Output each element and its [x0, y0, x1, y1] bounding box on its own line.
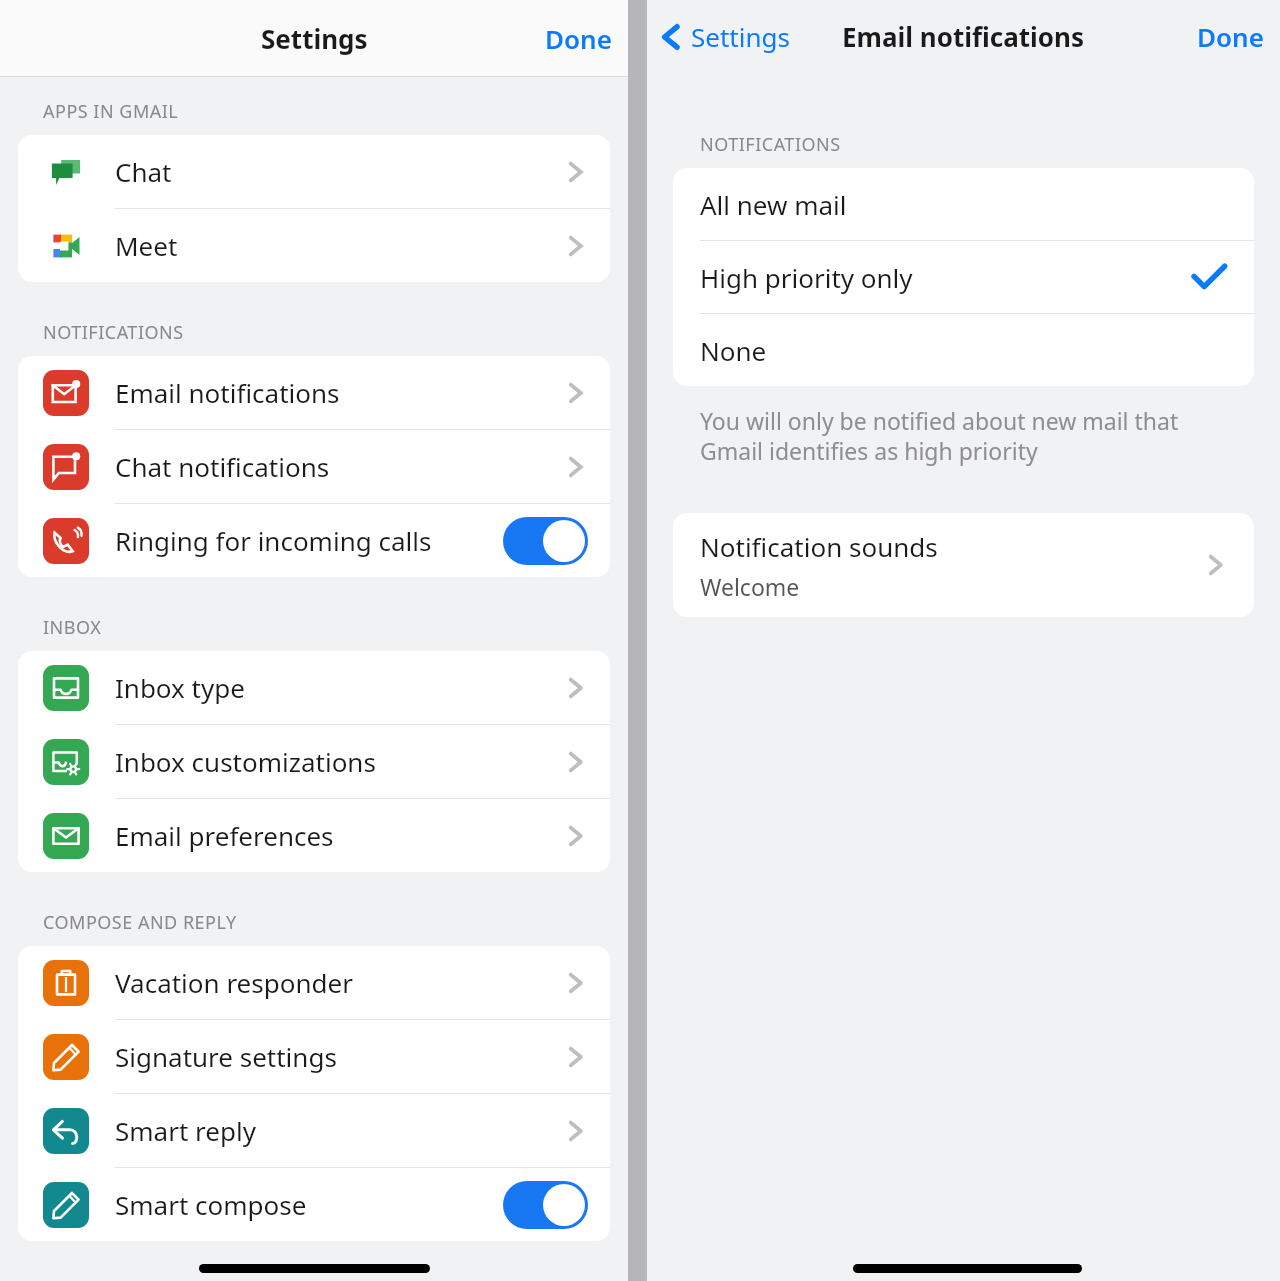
staticText: COMPOSE AND REPLY — [43, 910, 237, 935]
button[interactable]: Smart reply — [18, 1094, 610, 1168]
button[interactable]: Settings — [647, 11, 800, 62]
staticText: Email notifications — [842, 19, 1085, 54]
staticText: Smart reply — [115, 1113, 564, 1148]
staticText: Settings — [691, 19, 790, 54]
button[interactable]: Inbox type — [18, 651, 610, 725]
staticText: Ringing for incoming calls — [115, 523, 503, 558]
button[interactable]: Meet — [18, 209, 610, 282]
button[interactable]: None — [673, 314, 1254, 386]
staticText: NOTIFICATIONS — [43, 320, 184, 345]
button[interactable]: Vacation responder — [18, 946, 610, 1020]
button[interactable]: Notification sounds — [673, 513, 1254, 617]
button[interactable]: Chat — [18, 135, 610, 209]
staticText: Meet — [115, 228, 564, 263]
button[interactable]: Done — [1181, 7, 1280, 66]
staticText: Chat notifications — [115, 449, 564, 484]
button[interactable]: Inbox customizations — [18, 725, 610, 799]
staticText: Email notifications — [115, 375, 564, 410]
staticText: Done — [1197, 19, 1264, 54]
staticText: Smart compose — [115, 1187, 503, 1222]
staticText: Vacation responder — [115, 965, 564, 1000]
staticText: Inbox customizations — [115, 744, 564, 779]
staticText: APPS IN GMAIL — [43, 99, 179, 124]
staticText: Done — [545, 21, 612, 56]
button[interactable]: Signature settings — [18, 1020, 610, 1094]
staticText: Inbox type — [115, 670, 564, 705]
staticText: Chat — [115, 154, 564, 189]
staticText: Signature settings — [115, 1039, 564, 1074]
staticText: Settings — [261, 21, 368, 56]
staticText: Welcome — [700, 571, 800, 602]
staticText: Email preferences — [115, 818, 564, 853]
staticText: All new mail — [700, 187, 1226, 222]
button[interactable]: Chat notifications — [18, 430, 610, 504]
button[interactable]: Email notifications — [18, 356, 610, 430]
button[interactable]: Ringing for incoming calls — [18, 504, 610, 577]
button[interactable]: Email preferences — [18, 799, 610, 872]
button[interactable]: Smart compose — [18, 1168, 610, 1241]
staticText: None — [700, 333, 1226, 368]
staticText: You will only be notified about new mail… — [700, 405, 1204, 467]
button[interactable]: High priority only — [673, 241, 1254, 314]
staticText: Notification sounds — [700, 529, 938, 564]
staticText: High priority only — [700, 260, 1192, 295]
button[interactable]: Toggle, on — [503, 517, 588, 565]
staticText: INBOX — [43, 615, 102, 640]
staticText: NOTIFICATIONS — [700, 132, 841, 157]
button[interactable]: Done — [529, 9, 628, 68]
button[interactable]: All new mail — [673, 168, 1254, 241]
button[interactable]: Toggle, on — [503, 1181, 588, 1229]
